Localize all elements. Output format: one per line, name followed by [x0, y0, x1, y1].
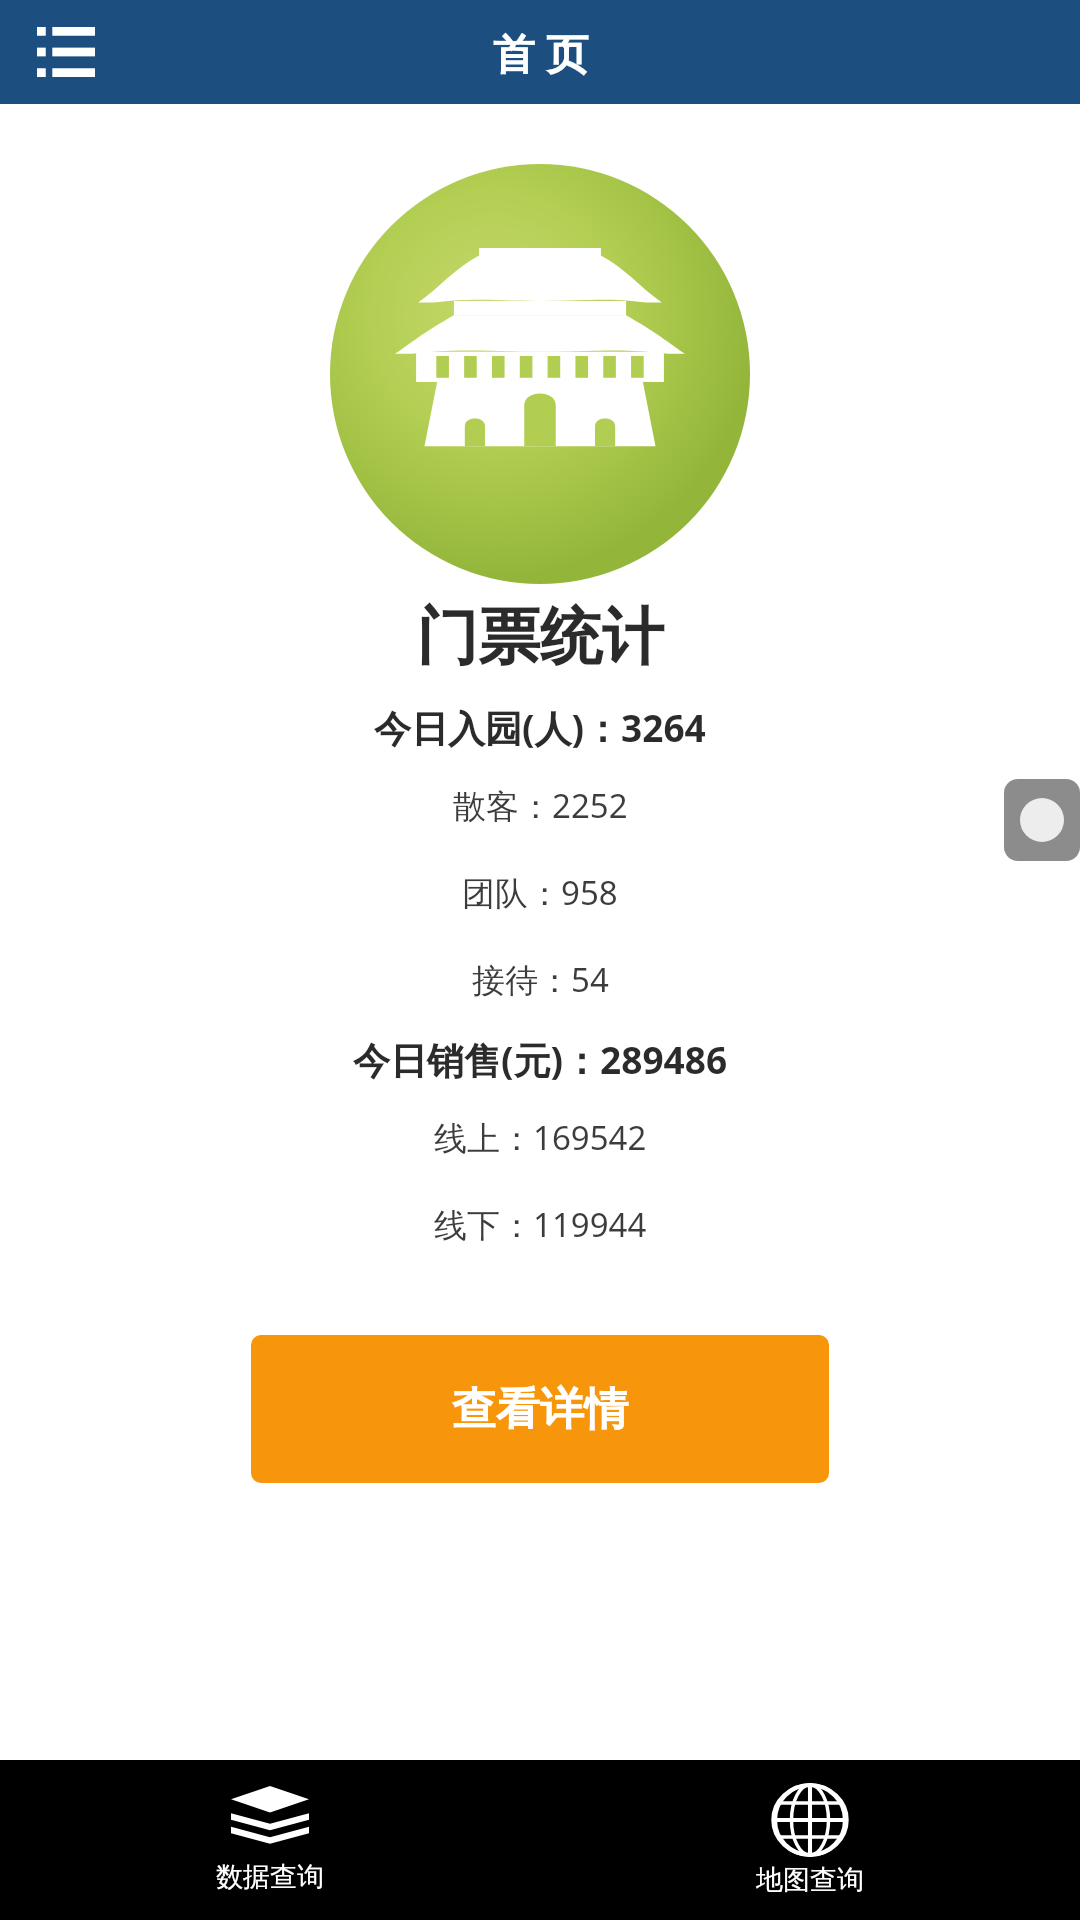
staticText: 接待：54: [472, 957, 609, 1002]
button[interactable]: Menu: [26, 12, 106, 92]
button[interactable]: Assistive touch: [1004, 779, 1080, 861]
staticText: 线下：119944: [434, 1202, 647, 1247]
staticText: 查看详情: [452, 1382, 628, 1437]
staticText: 今日入园(人)：3264: [374, 702, 706, 753]
button[interactable]: 地图查询: [680, 1783, 940, 1897]
staticText: 门票统计: [416, 598, 664, 676]
staticText: 团队：958: [462, 870, 618, 915]
button[interactable]: 数据查询: [140, 1786, 400, 1894]
staticText: 线上：169542: [434, 1115, 647, 1160]
button[interactable]: 查看详情: [251, 1335, 829, 1483]
staticText: 首 页: [493, 24, 588, 81]
staticText: 数据查询: [216, 1860, 324, 1894]
staticText: 今日销售(元)：289486: [353, 1034, 728, 1085]
staticText: 散客：2252: [453, 783, 628, 828]
staticText: 地图查询: [756, 1863, 864, 1897]
